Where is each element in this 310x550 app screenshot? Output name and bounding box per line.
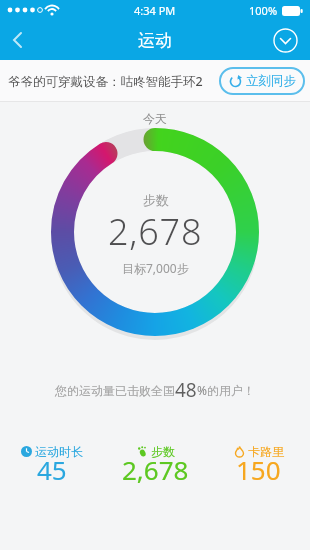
staticText: 您的运动量已击败全国 <box>55 383 175 398</box>
staticText: 2,678 <box>108 207 203 256</box>
button[interactable]: 步数 <box>104 444 207 494</box>
staticText: 运动 <box>138 30 172 51</box>
staticText: 48 <box>175 377 197 403</box>
staticText: 立刻同步 <box>246 73 296 89</box>
button[interactable] <box>0 20 36 60</box>
button[interactable]: 立刻同步 <box>219 67 305 95</box>
staticText: 步数 <box>143 192 169 208</box>
staticText: 的用户！ <box>207 383 255 398</box>
staticText: 今天 <box>143 111 167 126</box>
staticText: 目标7,000步 <box>122 260 189 276</box>
staticText: 4:34 PM <box>134 3 176 18</box>
staticText: 100% <box>249 3 278 18</box>
button[interactable]: 运动时长 <box>0 444 104 494</box>
staticText: 步数 <box>151 444 175 459</box>
staticText: 爷爷的可穿戴设备：咕咚智能手环2 <box>8 73 203 90</box>
staticText: 2,678 <box>122 452 189 487</box>
staticText: 45 <box>37 452 67 487</box>
staticText: 150 <box>236 452 281 487</box>
button[interactable]: 卡路里 <box>207 444 310 494</box>
staticText: 运动时长 <box>35 444 83 459</box>
staticText: % <box>197 382 207 398</box>
button[interactable] <box>270 25 300 55</box>
staticText: 卡路里 <box>248 444 284 459</box>
